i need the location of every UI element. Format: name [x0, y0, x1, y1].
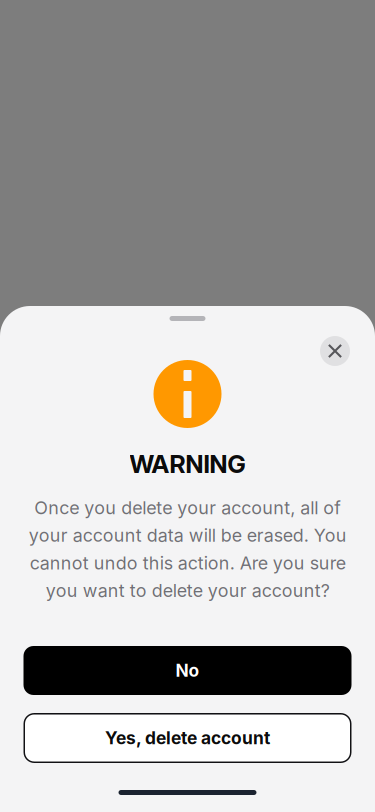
button[interactable]: Close: [320, 336, 350, 366]
staticText: No: [175, 660, 199, 681]
staticText: WARNING: [129, 449, 245, 479]
button[interactable]: No: [23, 646, 351, 695]
staticText: Yes, delete account: [105, 727, 270, 748]
staticText: Once you delete your account, all of you…: [28, 497, 346, 601]
button[interactable]: Yes, delete account: [23, 713, 351, 763]
